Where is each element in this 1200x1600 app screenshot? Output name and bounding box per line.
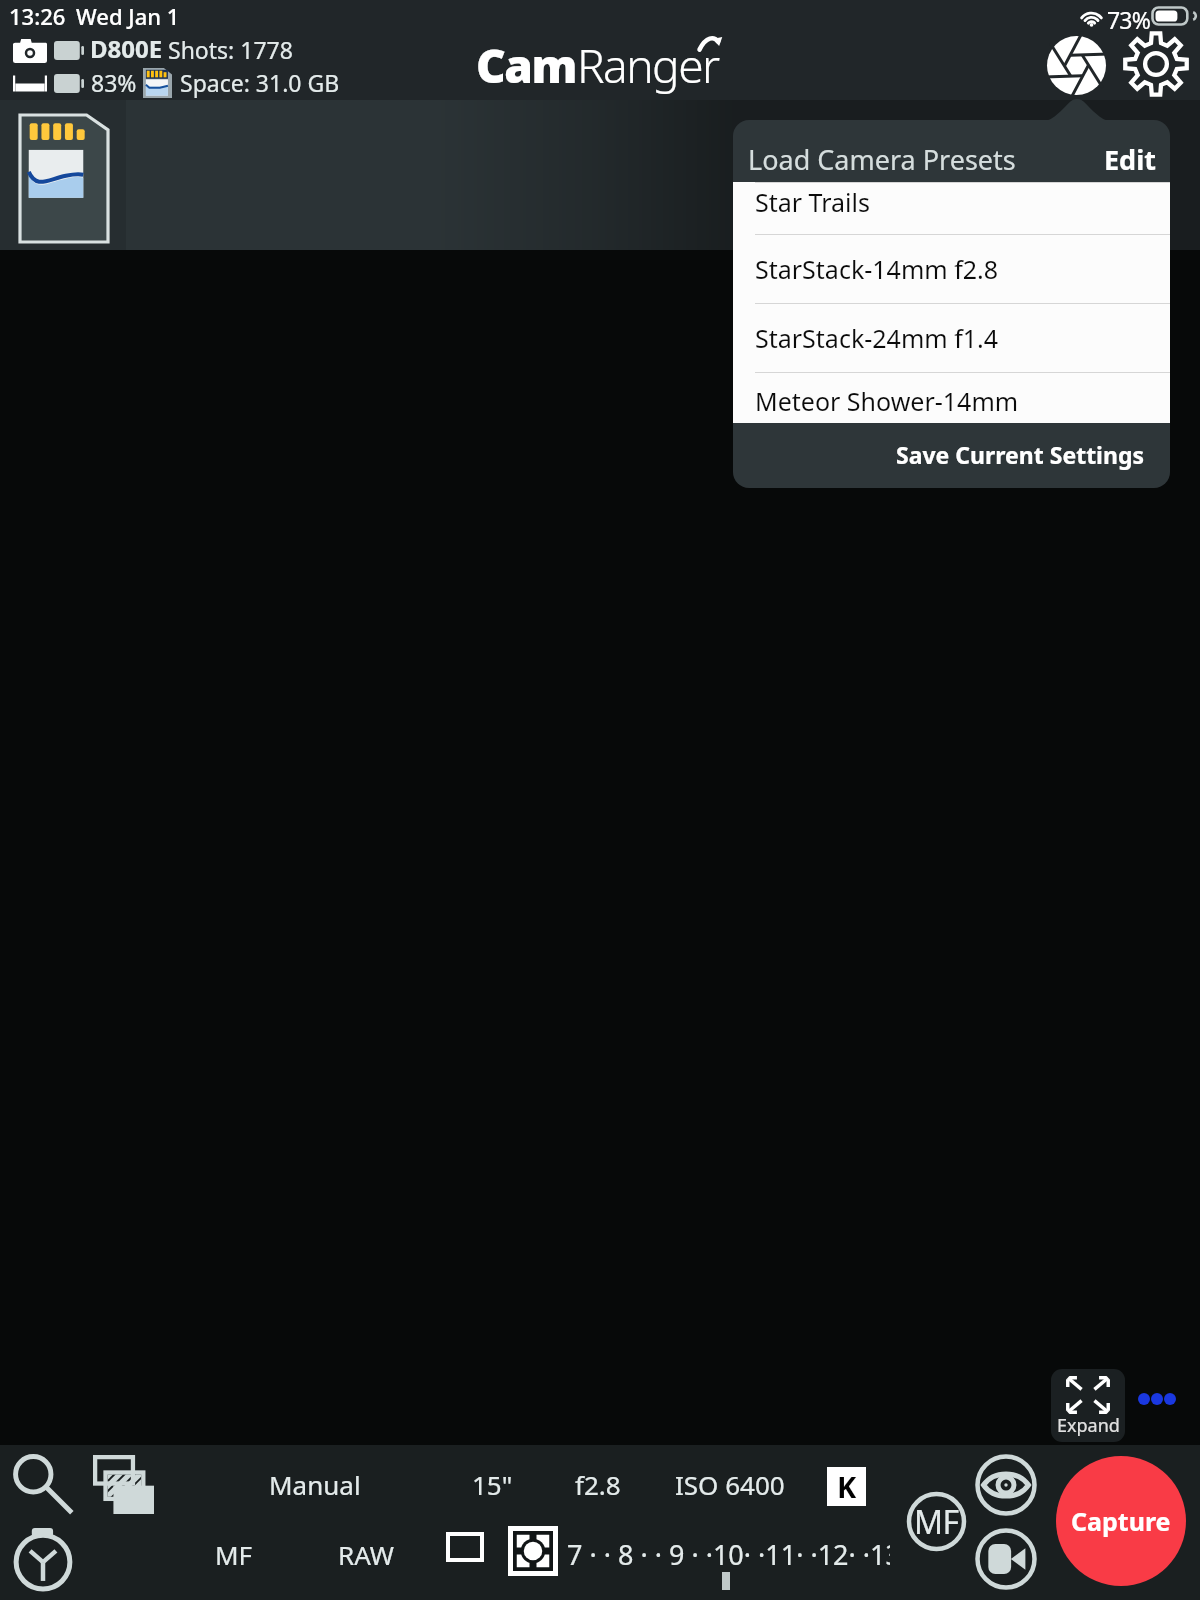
- staticText: StarStack-14mm f2.8: [755, 252, 999, 286]
- staticText: 7 · · 8 · · 9 · ·10· ·11· ·12· ·13: [567, 1536, 890, 1568]
- staticText: D800E: [90, 32, 163, 65]
- button[interactable]: MF: [215, 1537, 253, 1572]
- staticText: Wed Jan 1: [76, 1, 180, 31]
- staticText: Shots: 1778: [168, 34, 293, 65]
- staticText: K: [837, 1467, 857, 1506]
- button[interactable]: 15": [472, 1467, 513, 1502]
- button[interactable]: Video record: [975, 1528, 1037, 1590]
- button[interactable]: Manual focus: [907, 1492, 966, 1551]
- button[interactable]: Expand: [1051, 1369, 1125, 1442]
- staticText: Ranger: [577, 34, 719, 97]
- button[interactable]: Meteor Shower-14mm: [733, 372, 1170, 423]
- button[interactable]: Camera presets: [1033, 22, 1119, 108]
- staticText: Star Trails: [755, 185, 870, 219]
- button[interactable]: Star Trails: [733, 182, 1170, 234]
- staticText: Expand: [1057, 1413, 1120, 1438]
- button[interactable]: Manual: [269, 1467, 361, 1502]
- staticText: Load Camera Presets: [748, 141, 1016, 178]
- button[interactable]: Last captured photo: [17, 112, 111, 245]
- button[interactable]: Bracketing: [93, 1455, 154, 1514]
- button[interactable]: Settings: [1114, 22, 1200, 108]
- button[interactable]: Zoom: [15, 1456, 73, 1514]
- button[interactable]: StarStack-24mm f1.4: [733, 303, 1170, 372]
- staticText: 13:26: [9, 1, 66, 31]
- staticText: MF: [914, 1500, 959, 1544]
- staticText: Space: 31.0 GB: [180, 67, 340, 98]
- staticText: Edit: [1104, 141, 1156, 178]
- button[interactable]: ISO 6400: [675, 1467, 785, 1502]
- button[interactable]: RAW: [338, 1537, 394, 1572]
- staticText: 73%: [1107, 4, 1151, 35]
- staticText: Meteor Shower-14mm: [755, 384, 1019, 418]
- button[interactable]: Metering mode: [508, 1526, 558, 1576]
- staticText: StarStack-24mm f1.4: [755, 321, 999, 355]
- button[interactable]: f2.8: [575, 1467, 621, 1502]
- button[interactable]: Interval timer: [15, 1528, 71, 1590]
- button[interactable]: Capture: [1056, 1456, 1186, 1586]
- button[interactable]: Image area: [446, 1532, 484, 1562]
- staticText: Capture: [1071, 1504, 1171, 1538]
- button[interactable]: Live view: [975, 1454, 1037, 1516]
- button[interactable]: StarStack-14mm f2.8: [733, 234, 1170, 303]
- staticText: 83%: [91, 67, 137, 98]
- button[interactable]: K: [827, 1467, 866, 1506]
- staticText: Save Current Settings: [896, 439, 1145, 470]
- staticText: Cam: [476, 34, 577, 97]
- button[interactable]: Load Camera Presets: [733, 120, 1170, 182]
- button[interactable]: Save Current Settings: [733, 423, 1170, 488]
